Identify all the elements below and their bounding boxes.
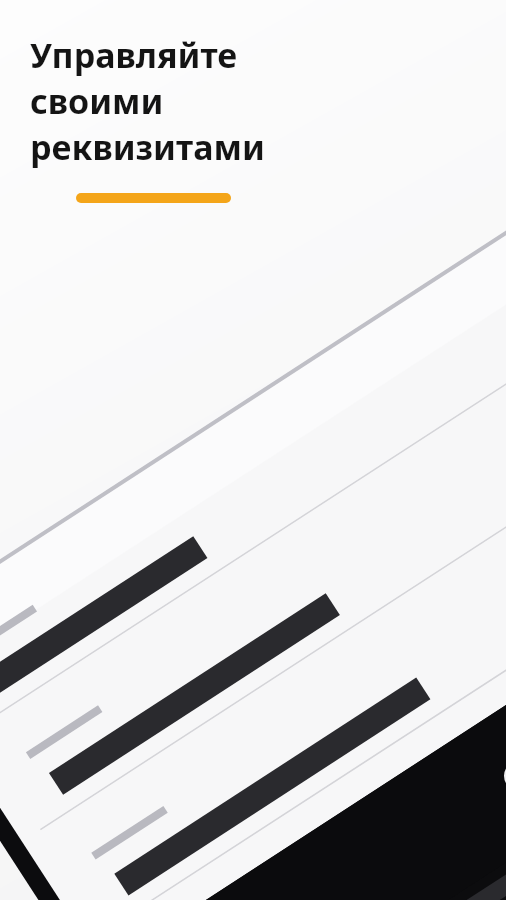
staticText: реквизитами [30,124,265,170]
button[interactable]: Accent [76,193,231,203]
staticText: Управляйте [30,32,238,78]
staticText: своими [30,78,164,124]
